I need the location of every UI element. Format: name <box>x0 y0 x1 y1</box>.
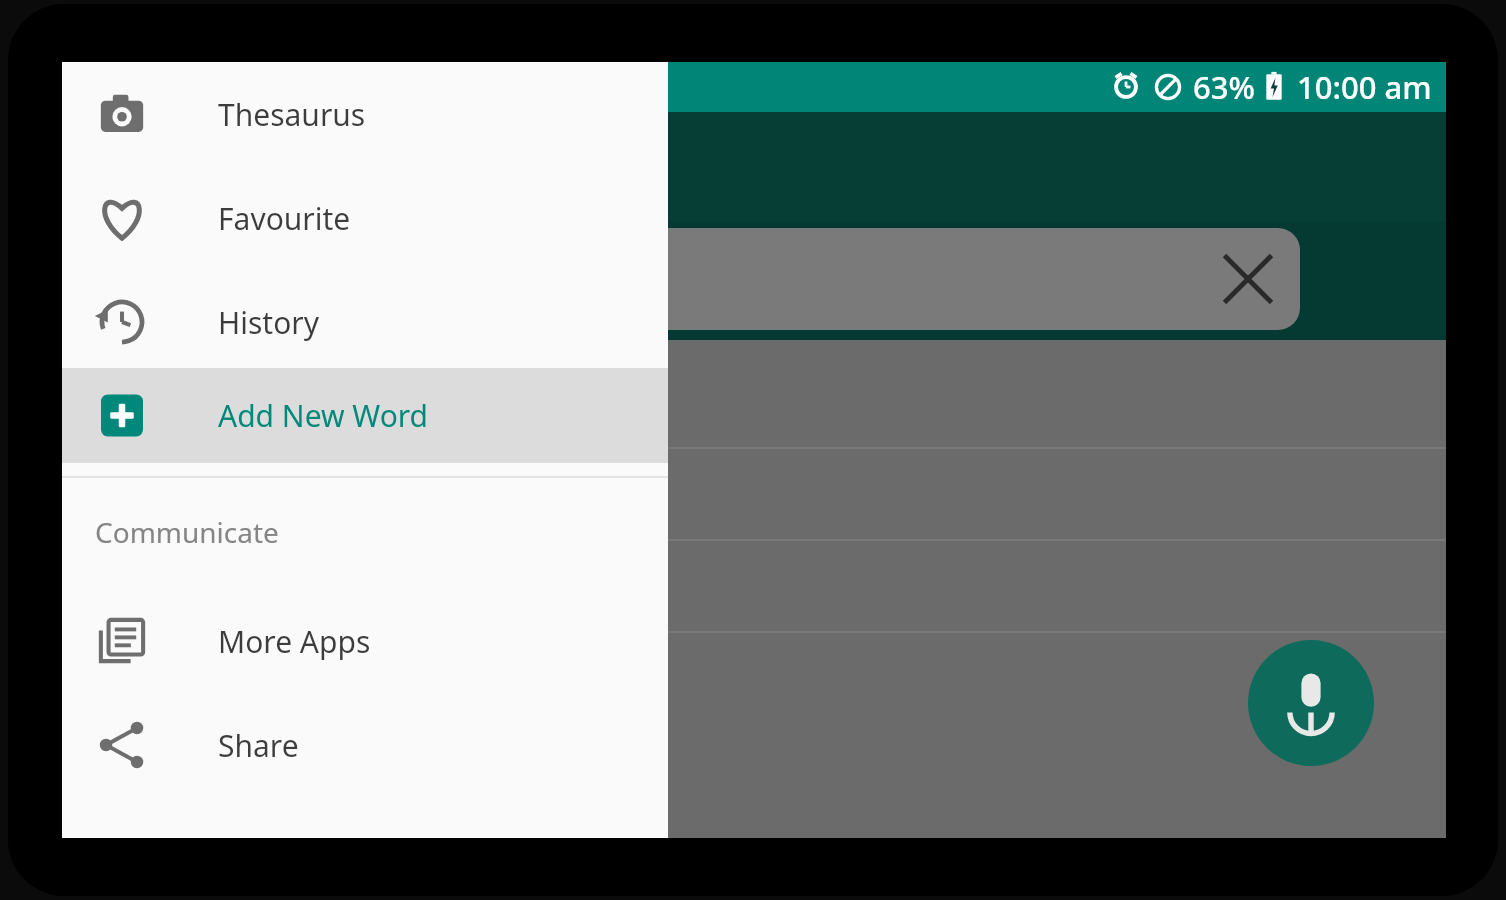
staticText: Share <box>218 725 299 766</box>
staticText: Favourite <box>218 198 351 239</box>
button[interactable]: Thesaurus <box>62 62 668 166</box>
staticText: Add New Word <box>218 395 429 436</box>
staticText: 10:00 am <box>1297 66 1432 108</box>
button[interactable]: Favourite <box>62 166 668 270</box>
staticText: More Apps <box>218 621 371 662</box>
button[interactable]: History <box>62 270 668 374</box>
staticText: Thesaurus <box>218 94 366 135</box>
button[interactable]: Share <box>62 693 668 797</box>
button[interactable]: More Apps <box>62 589 668 693</box>
button[interactable]: Add New Word <box>62 368 668 463</box>
button[interactable]: Clear search <box>1220 251 1276 307</box>
staticText: Communicate <box>95 513 279 551</box>
staticText: History <box>218 302 320 343</box>
button[interactable]: Voice search <box>1248 640 1374 766</box>
staticText: 63% <box>1193 66 1255 108</box>
button[interactable]: Clear search <box>92 228 1300 330</box>
